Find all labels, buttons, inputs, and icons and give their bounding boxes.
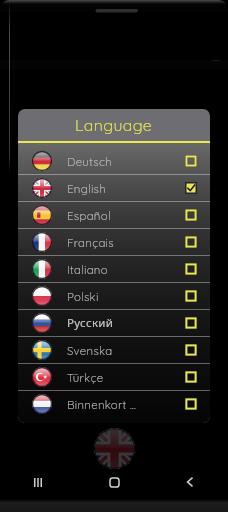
- button[interactable]: Home: [76, 462, 152, 502]
- button[interactable]: Current language: [94, 428, 135, 469]
- staticText: Svenska: [67, 343, 113, 357]
- staticText: Русский: [67, 315, 114, 331]
- button[interactable]: Deutsch: [18, 147, 210, 174]
- staticText: English: [67, 181, 106, 195]
- staticText: Language: [75, 115, 153, 135]
- button[interactable]: Türkçe: [18, 363, 210, 390]
- staticText: Deutsch: [67, 154, 112, 168]
- staticText: Binnenkort ...: [67, 397, 137, 411]
- button[interactable]: Back: [152, 462, 228, 502]
- button[interactable]: Svenska: [18, 336, 210, 363]
- button[interactable]: Binnenkort ...: [18, 390, 210, 417]
- button[interactable]: Menu: [0, 32, 34, 69]
- button[interactable]: Español: [18, 201, 210, 228]
- button[interactable]: Français: [18, 228, 210, 255]
- staticText: Italiano: [67, 262, 108, 276]
- staticText: Türkçe: [67, 370, 104, 384]
- staticText: Français: [67, 235, 114, 249]
- button[interactable]: Polski: [18, 282, 210, 309]
- button[interactable]: Recent apps: [0, 462, 76, 502]
- staticText: Español: [67, 208, 111, 222]
- button[interactable]: Italiano: [18, 255, 210, 282]
- staticText: Polski: [67, 289, 99, 303]
- button[interactable]: English: [18, 174, 210, 201]
- button[interactable]: Русский: [18, 309, 210, 336]
